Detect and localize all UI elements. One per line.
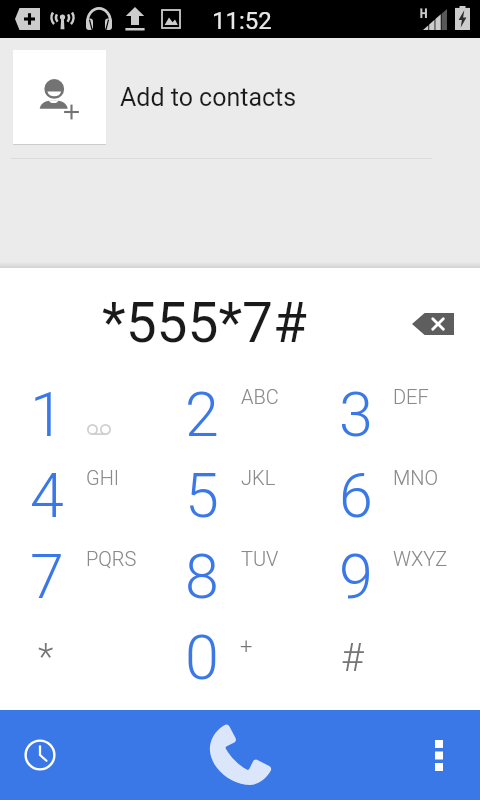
staticText: GHI [86, 466, 120, 489]
button[interactable]: Call history [0, 710, 80, 800]
staticText: # [341, 635, 364, 681]
button[interactable] [311, 453, 464, 534]
staticText: WXYZ [393, 547, 448, 570]
button[interactable] [311, 615, 464, 696]
staticText: 3 [339, 379, 373, 450]
button[interactable] [157, 615, 310, 696]
staticText: + [240, 634, 253, 660]
staticText: 9 [339, 541, 373, 612]
button[interactable]: Backspace [398, 297, 468, 351]
staticText: PQRS [86, 547, 137, 570]
button[interactable] [0, 615, 157, 696]
button[interactable] [157, 372, 310, 453]
staticText: 6 [339, 460, 373, 531]
button[interactable] [0, 534, 157, 615]
staticText: 7 [30, 541, 64, 612]
staticText: 11:52 [212, 7, 272, 35]
staticText: MNO [393, 466, 439, 489]
staticText: 5 [185, 460, 219, 531]
button[interactable] [157, 534, 310, 615]
staticText: ABC [241, 385, 279, 408]
button[interactable] [0, 453, 157, 534]
staticText: 4 [30, 460, 64, 531]
staticText: 8 [185, 541, 219, 612]
staticText: DEF [393, 385, 429, 408]
staticText: 0 [185, 622, 219, 693]
button[interactable] [0, 372, 157, 453]
button[interactable]: Add to contacts [0, 38, 480, 156]
staticText: *555*7# [102, 291, 307, 355]
staticText: TUV [241, 547, 279, 570]
staticText: * [38, 636, 54, 678]
staticText: 1 [30, 379, 64, 450]
staticText: 2 [185, 379, 219, 450]
staticText: JKL [241, 466, 276, 489]
button[interactable]: More options [400, 710, 480, 800]
button[interactable] [157, 453, 310, 534]
staticText: Add to contacts [120, 83, 297, 112]
button[interactable] [311, 372, 464, 453]
button[interactable]: Call [180, 710, 300, 800]
button[interactable] [311, 534, 464, 615]
